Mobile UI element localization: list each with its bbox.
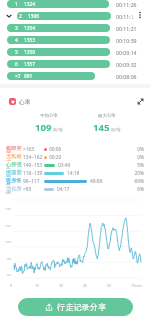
staticText: 1506 [28,13,39,20]
staticText: 140~153 [23,162,43,169]
staticText: 00:09:32 [116,61,137,68]
staticText: 5 [15,49,18,56]
staticText: 0 [10,283,13,288]
button[interactable]: 4 [0,36,150,44]
staticText: 6% [132,186,144,193]
staticText: 3 [15,25,18,32]
button[interactable]: 2 [0,12,150,20]
staticText: 49:09 [90,178,103,185]
staticText: 1357 [24,61,35,68]
staticText: <95 [23,186,32,193]
button[interactable]: 5 [0,48,150,56]
staticText: 14:19 [67,170,80,177]
staticText: 1354 [24,25,35,32]
button[interactable]: 行走记录分享 [18,298,133,316]
staticText: 活化身体 [6,185,23,193]
button[interactable]: 1 [0,0,150,8]
staticText: 2 [19,13,22,20]
staticText: 145 [93,121,110,134]
staticText: 燃脂塑形 [6,169,23,177]
staticText: 00:11:21 [116,25,137,32]
staticText: 80 [7,257,12,260]
staticText: 991 [24,73,33,80]
staticText: 00:08:06 [116,73,137,80]
staticText: 极限突破 [6,145,23,153]
staticText: 1324 [24,1,35,8]
staticText: 平均心率 [40,113,58,119]
staticText: 次/分 [53,127,63,133]
staticText: 00:00 [49,146,62,153]
staticText: 160 [5,191,12,194]
staticText: 04:17 [57,186,70,193]
staticText: 100 [5,240,12,243]
staticText: 00:11:13 [116,13,137,20]
staticText: 120 [5,224,12,227]
staticText: 0% [132,154,144,161]
staticText: 60 [7,273,12,276]
staticText: 6 [15,61,18,68]
staticText: 00:10:39 [116,37,137,44]
staticText: 1359 [24,49,35,56]
staticText: 118~139 [23,170,43,177]
staticText: 60 [107,283,112,288]
staticText: 140 [5,207,12,210]
staticText: 1353 [24,37,35,44]
staticText: 无氧耐力 [6,153,23,161]
staticText: 15 [35,283,40,288]
button[interactable]: <7 [0,72,150,80]
staticText: 109 [35,121,52,134]
button[interactable]: Expand [135,97,146,106]
button[interactable]: 6 [0,60,150,68]
staticText: 4 [15,37,18,44]
staticText: 心肺强化 [6,161,23,169]
staticText: 次/分 [111,127,121,133]
staticText: 1 [15,1,18,8]
staticText: 00:20 [49,154,62,161]
staticText: 00:11:26 [116,1,137,8]
staticText: 154~162 [23,154,43,161]
staticText: 行走记录分享 [57,302,107,312]
staticText: 0% [132,146,144,153]
button[interactable]: 3 [0,24,150,32]
staticText: 00:09:14 [116,49,137,56]
staticText: 30 [59,283,64,288]
staticText: 20% [132,170,144,177]
staticText: 心率 [19,98,31,105]
staticText: 69% [132,178,144,185]
staticText: 暖身恢复 [6,177,23,185]
button[interactable]: More options [132,7,147,22]
staticText: <7 [15,73,21,80]
staticText: 5% [132,162,144,169]
staticText: 最大心率 [98,113,116,119]
staticText: 96~117 [23,178,40,185]
staticText: 45 [83,283,88,288]
staticText: 75min [131,283,142,288]
staticText: 03:49 [58,162,71,169]
staticText: >163 [23,146,34,153]
